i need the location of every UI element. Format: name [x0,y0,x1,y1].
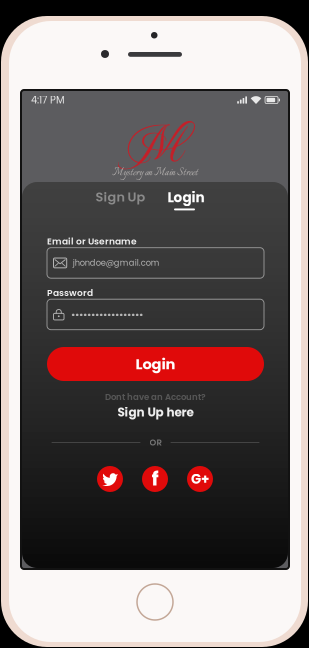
staticText: M [127,114,182,178]
button[interactable]: Sign in with Google [187,466,213,492]
button[interactable]: Login [165,187,206,209]
staticText: Email or Username [47,235,137,248]
staticText: OR [149,436,161,448]
button[interactable]: Dont have an Account? [47,391,264,421]
staticText: Sign Up here [117,404,193,421]
staticText: Login [167,188,204,207]
staticText: Mystery on Main Street [112,165,198,181]
button[interactable]: Login [47,347,264,381]
staticText: Dont have an Account? [105,391,206,403]
button[interactable]: Sign in with Facebook [142,466,168,492]
staticText: G+ [191,470,209,488]
staticText: 4:17 PM [31,93,65,107]
button[interactable]: Sign in with Twitter [97,466,123,492]
staticText: Login [135,354,175,374]
button[interactable]: Sign Up [93,187,147,211]
staticText: Password [47,286,93,299]
staticText: •••••••••••••••••• [71,307,143,322]
staticText: Sign Up [95,188,145,206]
staticText: jhondoe@gmail.com [73,257,160,269]
staticText: f [151,464,158,492]
